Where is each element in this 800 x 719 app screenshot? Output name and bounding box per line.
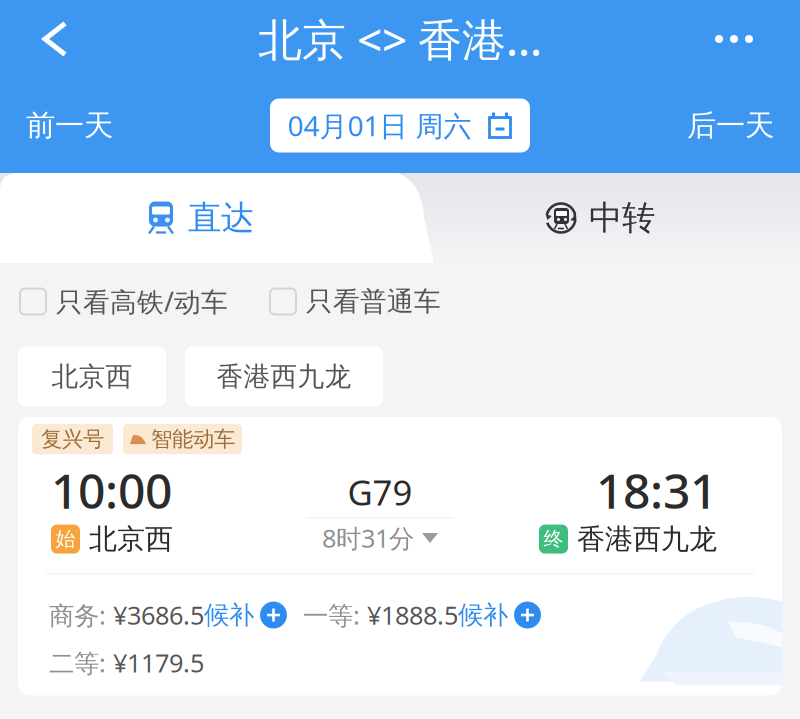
button[interactable]: 北京西 <box>18 346 166 406</box>
button[interactable]: 后一天 <box>661 91 800 159</box>
button[interactable]: Back <box>0 4 93 73</box>
staticText: 前一天 <box>26 107 113 143</box>
button[interactable]: 中转 <box>400 173 800 263</box>
staticText: G79 <box>347 469 412 515</box>
button[interactable]: 04月01日 周六 <box>270 98 530 152</box>
staticText: 香港西九龙 <box>577 522 717 556</box>
button[interactable]: 前一天 <box>0 91 139 159</box>
staticText: 直达 <box>188 197 254 238</box>
button[interactable]: 只看普通车 <box>270 285 441 318</box>
button[interactable]: 香港西九龙 <box>185 346 383 406</box>
staticText: 终 <box>543 527 563 551</box>
staticText: ¥3686.5 <box>113 598 204 632</box>
staticText: 智能动车 <box>151 426 235 452</box>
staticText: 10:00 <box>51 458 172 522</box>
staticText: 北京 <> 香港... <box>258 10 542 68</box>
staticText: 北京西 <box>89 522 173 556</box>
staticText: 8时31分 <box>322 521 414 555</box>
button[interactable]: 直达 <box>0 173 400 263</box>
staticText: 候补 <box>458 599 508 631</box>
staticText: 始 <box>55 527 75 551</box>
staticText: 北京西 <box>51 360 132 393</box>
staticText: 04月01日 周六 <box>287 107 471 144</box>
button[interactable]: 复兴号 <box>18 417 782 695</box>
staticText: 复兴号 <box>41 426 104 452</box>
staticText: 后一天 <box>687 107 774 143</box>
staticText: 一等: <box>287 598 367 632</box>
staticText: ¥1179.5 <box>113 646 204 679</box>
staticText: 二等: <box>49 646 113 679</box>
button[interactable]: 只看高铁/动车 <box>20 284 228 319</box>
button[interactable]: More options <box>691 6 800 72</box>
staticText: 中转 <box>589 197 655 238</box>
staticText: 候补 <box>204 599 254 631</box>
staticText: 香港西九龙 <box>216 360 351 393</box>
staticText: 只看普通车 <box>306 285 441 318</box>
staticText: 只看高铁/动车 <box>56 284 228 319</box>
staticText: ¥1888.5 <box>367 598 458 632</box>
staticText: 商务: <box>49 598 113 632</box>
staticText: 18:31 <box>596 458 717 522</box>
